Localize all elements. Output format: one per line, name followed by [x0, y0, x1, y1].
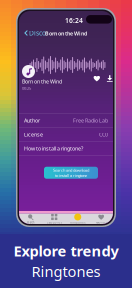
button[interactable]: Favourite	[93, 74, 101, 83]
staticText: License	[24, 131, 43, 138]
staticText: Ringtones	[70, 221, 85, 224]
button[interactable]: Disco	[22, 28, 48, 38]
staticText: 16:24	[65, 16, 83, 25]
staticText: Favorites	[96, 221, 107, 224]
button[interactable]: Search	[19, 213, 42, 224]
button[interactable]: Favorites	[89, 213, 113, 224]
staticText: Born on the Wind	[22, 78, 62, 85]
button[interactable]: Ringtones	[66, 213, 89, 224]
button[interactable]: Search and download	[44, 167, 98, 179]
staticText: 00:25	[22, 86, 31, 91]
staticText: Categories	[47, 221, 62, 224]
staticText: Ringtones	[31, 261, 100, 281]
staticText: Born on the Wind	[45, 30, 87, 37]
staticText: Explore trendy	[13, 241, 118, 260]
staticText: Free Radio Lab	[73, 117, 108, 124]
staticText: to install a ringtone	[55, 173, 87, 178]
button[interactable]: Download	[106, 74, 114, 83]
staticText: Author	[24, 117, 40, 124]
staticText: Disco	[29, 29, 46, 37]
staticText: How to install a ringtone?	[24, 145, 83, 152]
staticText: CC0	[99, 131, 108, 138]
button[interactable]: Categories	[42, 213, 66, 224]
staticText: Search and download	[53, 167, 89, 173]
staticText: Search	[27, 221, 35, 224]
